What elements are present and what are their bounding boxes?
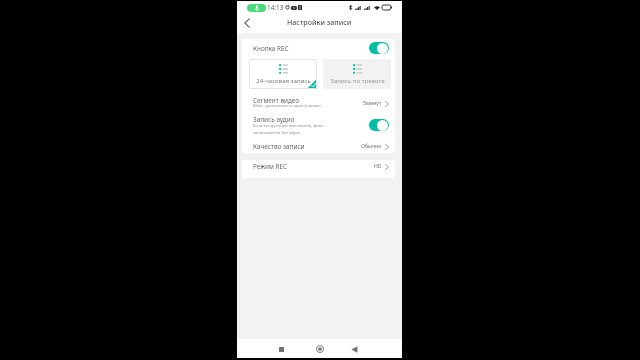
button[interactable]: Режим REC (242, 160, 395, 175)
staticText: 14:13 (267, 3, 284, 12)
staticText: 24-часовая запись (256, 76, 311, 84)
staticText: Кнопка REC (253, 44, 289, 53)
button[interactable]: Сегмент видео (242, 93, 395, 113)
staticText: Запись аудио (253, 115, 295, 124)
button[interactable]: Back (239, 15, 255, 31)
button[interactable]: Toggle (369, 42, 389, 54)
button[interactable]: Home (312, 341, 328, 357)
button[interactable]: Back (346, 341, 362, 357)
staticText: Если эта функция выключена, файл записыв… (253, 123, 324, 136)
staticText: Запись по тревоге (330, 76, 385, 84)
button[interactable]: Запись аудио (242, 113, 395, 138)
staticText: Качество записи (253, 142, 305, 151)
staticText: Обычно (361, 142, 382, 149)
button[interactable]: Кнопка REC (242, 39, 395, 58)
button[interactable]: 24-часовая запись (249, 59, 317, 89)
staticText: Сегмент видео (253, 96, 300, 105)
staticText: Макс. длительность одного видео (253, 103, 321, 109)
staticText: Режим REC (253, 162, 288, 171)
staticText: 5минут (363, 99, 382, 106)
button[interactable]: Recent apps (273, 341, 289, 357)
button[interactable]: Качество записи (242, 140, 395, 152)
button[interactable]: Toggle (369, 119, 389, 131)
staticText: Настройки записи (287, 17, 352, 27)
button[interactable]: Запись по тревоге (323, 59, 391, 89)
staticText: HD (374, 162, 382, 169)
